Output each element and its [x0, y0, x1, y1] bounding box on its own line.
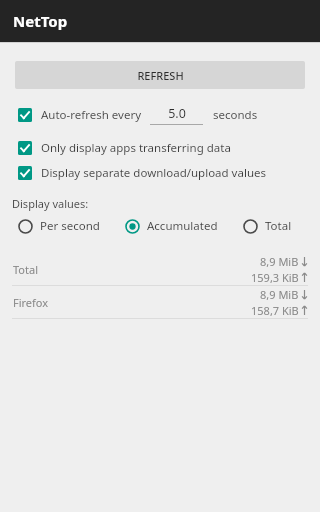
- staticText: 158,7 KiB: [251, 303, 299, 318]
- staticText: Per second: [40, 218, 100, 234]
- button[interactable]: Auto-refresh every: [0, 103, 320, 127]
- button[interactable]: Total: [243, 215, 292, 237]
- button[interactable]: Firefox: [0, 286, 320, 318]
- button[interactable]: Display separate download/upload values: [0, 161, 320, 185]
- button[interactable]: 5.0: [150, 105, 203, 125]
- staticText: 159,3 KiB: [251, 270, 299, 285]
- staticText: Only display apps transferring data: [41, 140, 231, 156]
- staticText: Auto-refresh every: [41, 107, 142, 123]
- staticText: Display separate download/upload values: [41, 165, 266, 181]
- button[interactable]: REFRESH: [15, 61, 305, 89]
- staticText: 8,9 MiB: [260, 287, 299, 302]
- staticText: NetTop: [13, 11, 68, 31]
- staticText: seconds: [213, 107, 258, 123]
- button[interactable]: Per second: [0, 215, 100, 237]
- staticText: Total: [265, 218, 292, 234]
- staticText: 8,9 MiB: [260, 254, 299, 269]
- button[interactable]: Total: [0, 253, 320, 285]
- staticText: Accumulated: [147, 218, 218, 234]
- button[interactable]: Only display apps transferring data: [0, 136, 320, 160]
- staticText: Display values:: [12, 196, 89, 211]
- staticText: Total: [13, 262, 38, 277]
- staticText: 5.0: [168, 105, 186, 122]
- staticText: REFRESH: [137, 68, 184, 83]
- button[interactable]: Accumulated: [125, 215, 218, 237]
- staticText: Firefox: [13, 295, 49, 310]
